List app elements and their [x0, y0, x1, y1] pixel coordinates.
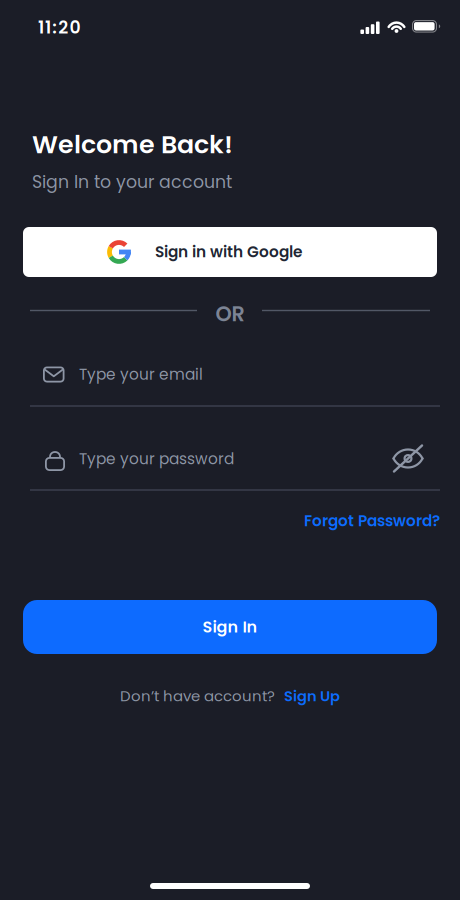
staticText: Sign In [202, 616, 257, 638]
staticText: Sign in with Google [155, 241, 302, 263]
button[interactable]: Sign Up [284, 686, 340, 706]
staticText: Type your password [79, 448, 234, 470]
staticText: Don’t have account? [120, 685, 275, 706]
staticText: Welcome Back! [32, 127, 233, 162]
staticText: Sign Up [284, 686, 340, 706]
button[interactable]: Show password [393, 444, 423, 472]
staticText: Type your email [79, 364, 203, 385]
staticText: Sign In to your account [32, 170, 232, 194]
button[interactable]: Sign In [23, 600, 437, 654]
staticText: OR [215, 299, 244, 328]
staticText: Forgot Password? [304, 510, 440, 532]
button[interactable]: Sign in with Google [23, 227, 437, 277]
button[interactable]: Forgot Password? [304, 510, 440, 532]
staticText: 11:20 [38, 15, 80, 40]
